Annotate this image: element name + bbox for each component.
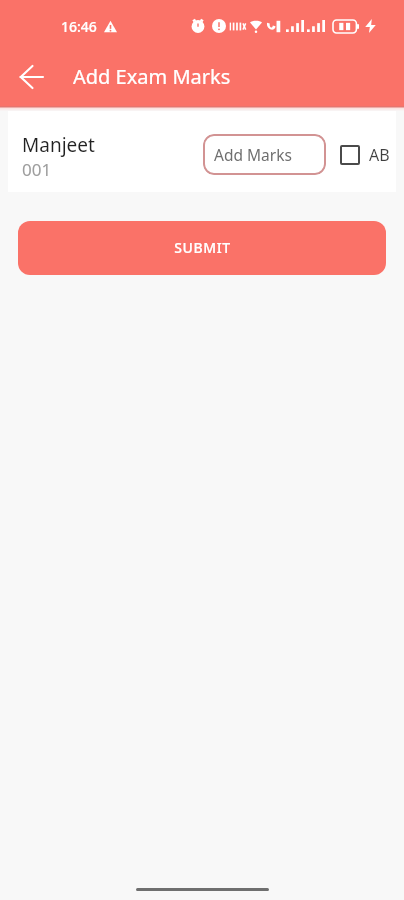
button[interactable]: AB	[340, 144, 390, 166]
staticText: Add Marks	[214, 144, 292, 165]
button[interactable]: Add Marks	[203, 134, 326, 175]
staticText: Manjeet	[22, 132, 95, 158]
staticText: SUBMIT	[174, 238, 231, 257]
button[interactable]: SUBMIT	[18, 221, 386, 275]
staticText: AB	[369, 144, 390, 166]
staticText: 16:46	[61, 17, 97, 36]
staticText: Add Exam Marks	[73, 63, 231, 90]
button[interactable]: Back	[10, 57, 54, 101]
staticText: 001	[22, 158, 52, 181]
